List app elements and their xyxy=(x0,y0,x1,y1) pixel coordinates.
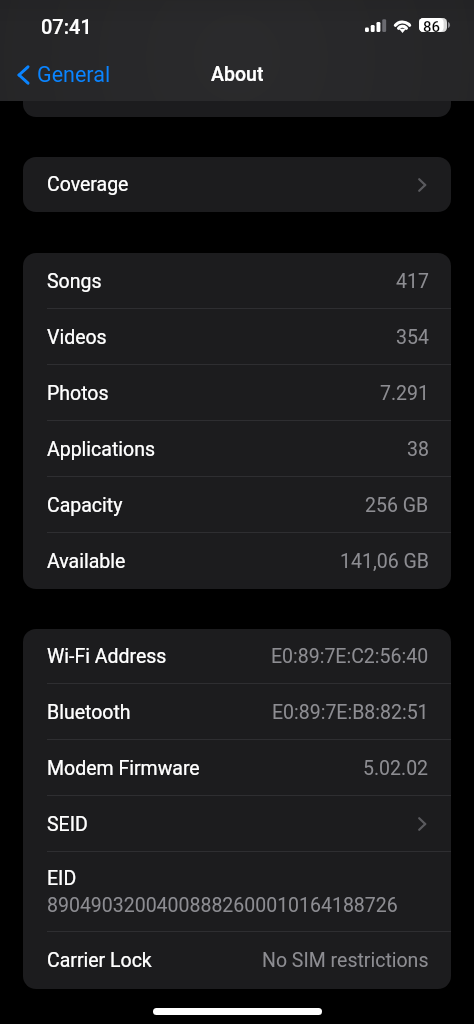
button[interactable]: Videos xyxy=(23,309,451,365)
staticText: No SIM restrictions xyxy=(262,949,429,972)
staticText: Capacity xyxy=(47,494,123,517)
staticText: E0:89:7E:C2:56:40 xyxy=(271,645,429,668)
staticText: 07:41 xyxy=(41,15,92,38)
staticText: Available xyxy=(47,550,126,573)
button[interactable]: Coverage xyxy=(23,157,451,212)
button[interactable]: Photos xyxy=(23,365,451,421)
staticText: 7.291 xyxy=(380,382,429,405)
staticText: 256 GB xyxy=(365,494,429,517)
staticText: Modem Firmware xyxy=(47,757,200,780)
staticText: 89049032004008882600010164188726 xyxy=(47,894,398,917)
staticText: 354 xyxy=(396,326,429,349)
staticText: Carrier Lock xyxy=(47,949,152,972)
staticText: 38 xyxy=(407,438,429,461)
button[interactable]: Songs xyxy=(23,253,451,309)
button[interactable]: Wi-Fi Address xyxy=(23,629,451,684)
button[interactable]: Bluetooth xyxy=(23,684,451,740)
staticText: Bluetooth xyxy=(47,701,131,724)
staticText: 141,06 GB xyxy=(340,550,429,573)
button[interactable]: Applications xyxy=(23,421,451,477)
button[interactable]: Capacity xyxy=(23,477,451,533)
button[interactable]: Modem Firmware xyxy=(23,740,451,796)
staticText: Coverage xyxy=(47,173,129,196)
staticText: Wi-Fi Address xyxy=(47,645,167,668)
staticText: Videos xyxy=(47,326,107,349)
staticText: E0:89:7E:B8:82:51 xyxy=(272,701,429,724)
staticText: General xyxy=(37,62,111,87)
button[interactable]: SEID xyxy=(23,796,451,852)
staticText: 417 xyxy=(396,270,429,293)
staticText: Songs xyxy=(47,270,102,293)
button[interactable]: EID xyxy=(23,852,451,932)
staticText: EID xyxy=(47,867,77,890)
button[interactable]: Available xyxy=(23,533,451,589)
staticText: Applications xyxy=(47,438,155,461)
staticText: 5.02.02 xyxy=(363,757,429,780)
staticText: Photos xyxy=(47,382,109,405)
button[interactable]: Carrier Lock xyxy=(23,932,451,989)
staticText: SEID xyxy=(47,813,88,836)
button[interactable]: Back to General xyxy=(0,54,123,95)
staticText: About xyxy=(211,63,264,86)
staticText: 86 xyxy=(423,18,441,32)
